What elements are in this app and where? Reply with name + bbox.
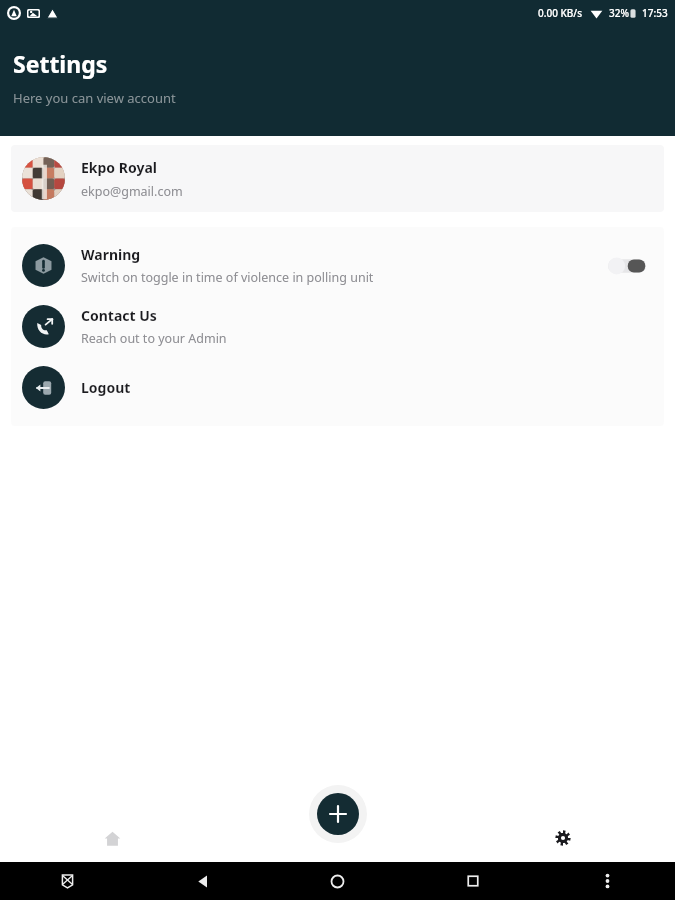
staticText: Warning bbox=[81, 245, 141, 264]
staticText: 32% bbox=[609, 6, 629, 20]
staticText: ekpo@gmail.com bbox=[81, 183, 183, 200]
staticText: 17:53 bbox=[642, 6, 668, 20]
staticText: 0.00 KB/s bbox=[538, 6, 583, 20]
button[interactable]: Logout bbox=[11, 357, 664, 418]
button[interactable]: Settings bbox=[450, 800, 675, 862]
button[interactable]: Add bbox=[309, 785, 367, 843]
button[interactable]: Warning toggle bbox=[608, 257, 646, 275]
button[interactable]: Back bbox=[135, 874, 270, 889]
staticText: Logout bbox=[81, 378, 131, 397]
staticText: Contact Us bbox=[81, 306, 157, 325]
staticText: Here you can view account bbox=[13, 89, 176, 107]
button[interactable]: Home bbox=[0, 800, 225, 862]
button[interactable]: Ekpo Royal bbox=[11, 145, 664, 212]
staticText: Switch on toggle in time of violence in … bbox=[81, 269, 374, 286]
staticText: Settings bbox=[13, 48, 108, 79]
button[interactable]: Home bbox=[270, 874, 405, 889]
button[interactable]: Warning bbox=[11, 235, 664, 296]
button[interactable]: More options bbox=[540, 873, 675, 889]
button[interactable]: Contact Us bbox=[11, 296, 664, 357]
staticText: Ekpo Royal bbox=[81, 158, 157, 177]
staticText: Reach out to your Admin bbox=[81, 330, 227, 347]
button[interactable]: Recents bbox=[405, 874, 540, 888]
